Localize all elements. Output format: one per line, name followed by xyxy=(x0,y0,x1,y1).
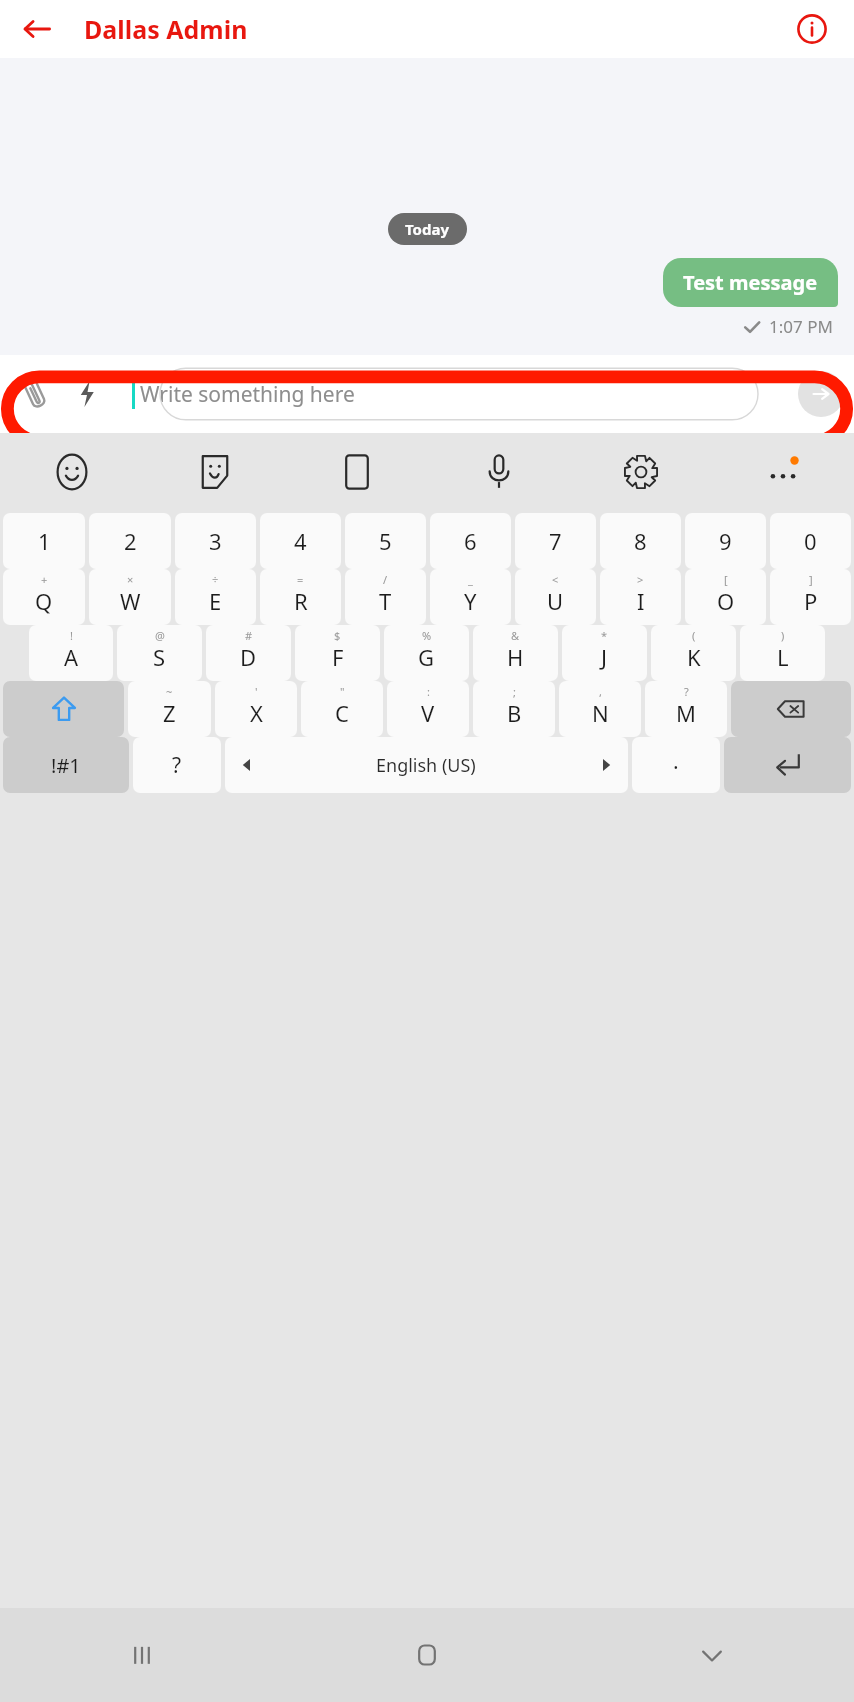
staticText: O xyxy=(717,586,735,616)
button[interactable]: [ xyxy=(685,569,766,625)
staticText: > xyxy=(637,572,644,587)
button[interactable]: Stickers xyxy=(143,433,286,511)
button[interactable]: English (US) xyxy=(225,737,628,793)
staticText: ' xyxy=(255,684,258,699)
staticText: 6 xyxy=(464,526,477,556)
button[interactable]: Voice input xyxy=(428,433,570,511)
button[interactable]: Hide keyboard xyxy=(569,1608,854,1702)
staticText: [ xyxy=(724,572,728,587)
staticText: A xyxy=(64,642,79,672)
button[interactable]: × xyxy=(89,569,171,625)
button[interactable]: ~ xyxy=(128,681,211,737)
staticText: ÷ xyxy=(212,572,219,587)
button[interactable]: < xyxy=(515,569,596,625)
button[interactable]: , xyxy=(559,681,641,737)
staticText: , xyxy=(599,684,602,699)
button[interactable]: & xyxy=(473,625,558,681)
staticText: Test message xyxy=(683,269,818,296)
staticText: V xyxy=(421,698,435,728)
button[interactable]: Write something here xyxy=(116,368,790,420)
staticText: Q xyxy=(35,586,53,616)
staticText: K xyxy=(687,642,701,672)
staticText: + xyxy=(41,572,48,587)
button[interactable]: Back xyxy=(14,6,60,52)
button[interactable]: Shift xyxy=(3,681,124,737)
staticText: ? xyxy=(684,684,689,699)
staticText: 3 xyxy=(209,526,222,556)
staticText: F xyxy=(332,642,344,672)
staticText: L xyxy=(777,642,789,672)
button[interactable]: Info xyxy=(788,5,836,53)
staticText: Write something here xyxy=(140,380,355,409)
staticText: 7 xyxy=(549,526,562,556)
button[interactable]: More xyxy=(712,433,854,511)
staticText: ? xyxy=(172,751,182,780)
staticText: $ xyxy=(334,628,341,643)
staticText: !#1 xyxy=(51,752,81,779)
button[interactable]: 7 xyxy=(515,513,596,569)
button[interactable]: !#1 xyxy=(3,737,129,793)
staticText: R xyxy=(294,586,308,616)
button[interactable]: Backspace xyxy=(731,681,851,737)
button[interactable]: * xyxy=(562,625,647,681)
button[interactable]: + xyxy=(3,569,85,625)
button[interactable]: 9 xyxy=(685,513,766,569)
button[interactable]: GIF xyxy=(286,433,428,511)
button[interactable]: ) xyxy=(740,625,825,681)
staticText: 8 xyxy=(634,526,647,556)
button[interactable]: 6 xyxy=(430,513,511,569)
staticText: ) xyxy=(781,628,785,643)
staticText: P xyxy=(804,586,818,616)
button[interactable]: / xyxy=(345,569,426,625)
button[interactable]: ÷ xyxy=(175,569,256,625)
staticText: % xyxy=(422,628,432,643)
button[interactable]: Quick action xyxy=(68,375,106,413)
button[interactable]: Attach xyxy=(14,373,56,415)
button[interactable]: # xyxy=(206,625,291,681)
button[interactable]: Send xyxy=(798,371,844,417)
button[interactable]: : xyxy=(387,681,469,737)
button[interactable]: Enter xyxy=(724,737,851,793)
button[interactable]: ] xyxy=(770,569,851,625)
staticText: M xyxy=(676,698,696,728)
staticText: N xyxy=(592,698,609,728)
button[interactable]: @ xyxy=(117,625,202,681)
staticText: . xyxy=(673,747,679,776)
staticText: X xyxy=(250,698,263,728)
button[interactable]: = xyxy=(260,569,341,625)
button[interactable]: Today xyxy=(388,213,467,245)
staticText: Y xyxy=(464,586,477,616)
button[interactable]: Recents xyxy=(0,1608,284,1702)
staticText: H xyxy=(507,642,524,672)
button[interactable]: " xyxy=(301,681,383,737)
button[interactable]: 4 xyxy=(260,513,341,569)
staticText: : xyxy=(427,684,430,699)
button[interactable]: 8 xyxy=(600,513,681,569)
button[interactable]: . xyxy=(632,737,720,793)
button[interactable]: 0 xyxy=(770,513,851,569)
button[interactable]: $ xyxy=(295,625,380,681)
staticText: B xyxy=(507,698,522,728)
button[interactable]: ; xyxy=(473,681,555,737)
button[interactable]: ' xyxy=(215,681,297,737)
button[interactable]: Settings xyxy=(570,433,712,511)
staticText: 0 xyxy=(804,526,817,556)
button[interactable]: % xyxy=(384,625,469,681)
staticText: ~ xyxy=(166,684,173,699)
button[interactable]: 1 xyxy=(3,513,85,569)
button[interactable]: _ xyxy=(430,569,511,625)
button[interactable]: 2 xyxy=(89,513,171,569)
button[interactable]: 5 xyxy=(345,513,426,569)
button[interactable]: Emoji xyxy=(0,433,143,511)
staticText: × xyxy=(127,572,134,587)
button[interactable]: 3 xyxy=(175,513,256,569)
button[interactable]: Home xyxy=(284,1608,569,1702)
staticText: ( xyxy=(692,628,696,643)
button[interactable]: ! xyxy=(29,625,113,681)
button[interactable]: ? xyxy=(133,737,221,793)
button[interactable]: > xyxy=(600,569,681,625)
button[interactable]: ( xyxy=(651,625,736,681)
button[interactable]: ? xyxy=(645,681,727,737)
staticText: W xyxy=(120,586,141,616)
button[interactable]: Test message xyxy=(663,258,838,307)
